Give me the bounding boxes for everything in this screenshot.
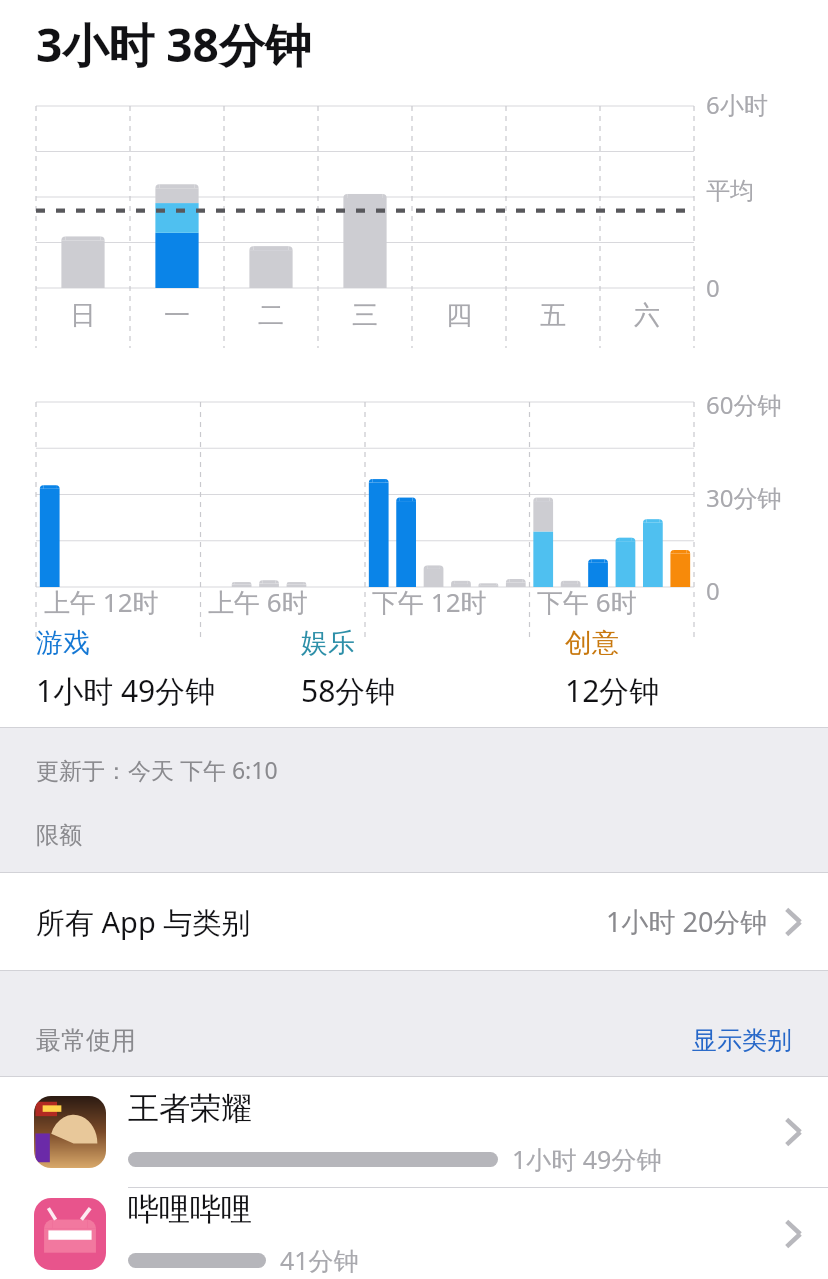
other: Open details	[784, 1219, 802, 1249]
staticText: 6小时	[706, 88, 768, 121]
staticText: 30分钟	[706, 481, 782, 514]
staticText: 一	[164, 299, 190, 332]
staticText: 限额	[36, 821, 82, 850]
staticText: 1小时 49分钟	[512, 1142, 662, 1176]
staticText: 下午 12时	[372, 584, 487, 620]
staticText: 12分钟	[565, 670, 660, 711]
staticText: 41分钟	[280, 1243, 359, 1277]
button[interactable]: 显示类别	[692, 1025, 792, 1056]
staticText: 上午 6时	[208, 584, 308, 620]
staticText: 更新于：今天 下午 6:10	[36, 754, 278, 785]
staticText: 日	[70, 299, 96, 332]
staticText: 二	[258, 299, 284, 332]
staticText: 三	[352, 299, 378, 332]
button[interactable]: 哔哩哔哩	[0, 1188, 828, 1279]
button[interactable]: 所有 App 与类别	[0, 873, 828, 970]
staticText: 0	[706, 271, 720, 304]
staticText: 最常使用	[36, 1025, 136, 1056]
button[interactable]: 娱乐	[301, 626, 565, 711]
staticText: 60分钟	[706, 388, 782, 421]
staticText: 3小时 38分钟	[36, 13, 311, 76]
other: Open details	[784, 1117, 802, 1147]
button[interactable]: 创意	[565, 626, 792, 711]
staticText: 58分钟	[301, 670, 396, 711]
staticText: 下午 6时	[537, 584, 637, 620]
staticText: 六	[634, 299, 660, 332]
staticText: 平均	[706, 176, 754, 206]
staticText: 游戏	[36, 626, 90, 660]
staticText: 1小时 20分钟	[606, 903, 768, 940]
staticText: 显示类别	[692, 1025, 792, 1056]
staticText: 哔哩哔哩	[128, 1190, 252, 1229]
staticText: 五	[540, 299, 566, 332]
staticText: 所有 App 与类别	[36, 902, 251, 942]
staticText: 0	[706, 574, 720, 607]
other: Open details	[784, 907, 802, 937]
staticText: 创意	[565, 626, 619, 660]
button[interactable]: 王者荣耀	[0, 1077, 828, 1187]
staticText: 王者荣耀	[128, 1089, 252, 1128]
staticText: 四	[446, 299, 472, 332]
staticText: 娱乐	[301, 626, 355, 660]
staticText: 上午 12时	[44, 584, 159, 620]
button[interactable]: 游戏	[36, 626, 301, 711]
staticText: 1小时 49分钟	[36, 670, 216, 711]
